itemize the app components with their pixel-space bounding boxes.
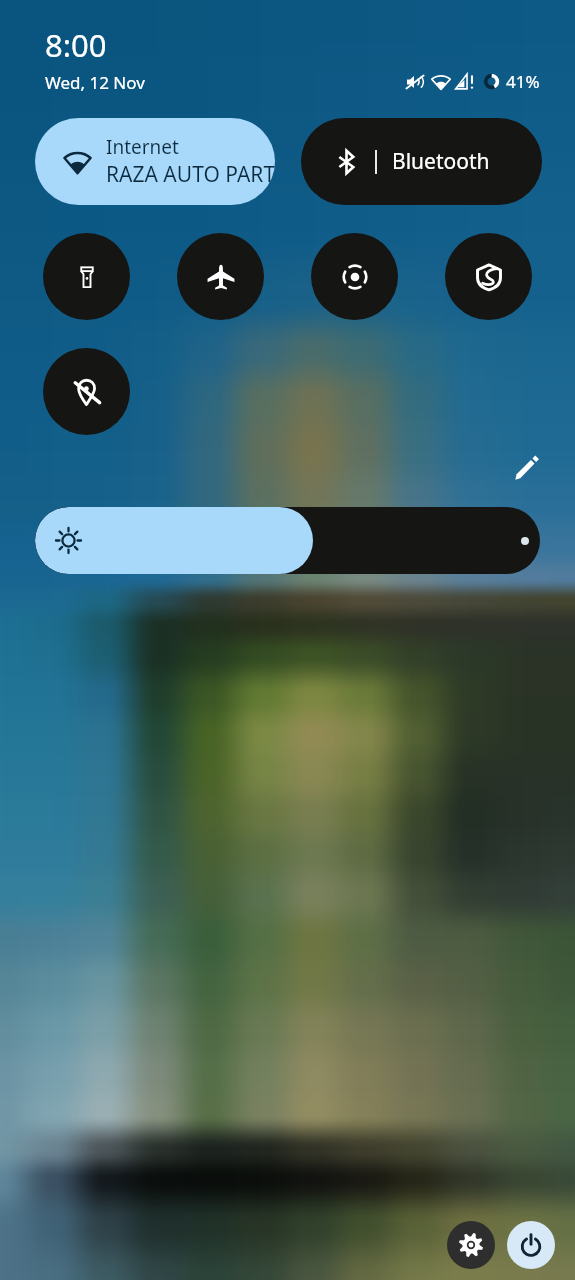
button[interactable]: Edit tiles (505, 446, 549, 490)
button[interactable]: Device protection (445, 233, 532, 320)
button[interactable]: Auto rotate (311, 233, 398, 320)
button[interactable]: Settings (447, 1221, 495, 1269)
button[interactable]: Flashlight (43, 233, 130, 320)
staticText: Bluetooth (392, 147, 490, 176)
staticText: 8:00 (45, 24, 107, 66)
button[interactable]: Location off (43, 348, 130, 435)
staticText: RAZA AUTO PARTS (106, 160, 275, 189)
staticText: 41% (506, 70, 540, 93)
button[interactable]: Power (507, 1221, 555, 1269)
staticText: Internet (106, 134, 179, 160)
button[interactable] (35, 507, 540, 574)
button[interactable]: Bluetooth (301, 118, 542, 205)
button[interactable]: Internet (35, 118, 275, 205)
button[interactable]: Airplane mode (177, 233, 264, 320)
staticText: Wed, 12 Nov (45, 71, 145, 94)
